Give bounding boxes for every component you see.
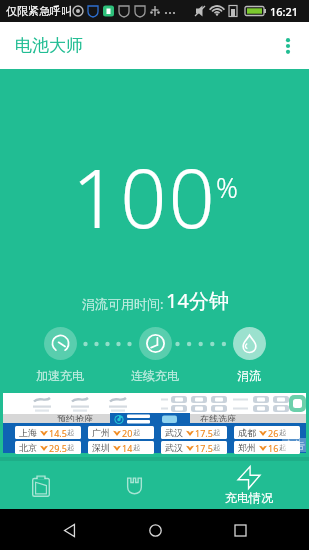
staticText: 上海 (19, 427, 37, 438)
button[interactable]: Back (52, 513, 86, 547)
button[interactable]: More options (269, 27, 307, 65)
button[interactable]: Battery health (0, 454, 86, 509)
button[interactable]: 充电情况 (204, 454, 294, 509)
button[interactable]: Charge mode (89, 454, 179, 509)
staticText: 成都 (238, 427, 256, 438)
staticText: 14.5 (49, 427, 67, 439)
button[interactable]: 武汉 (161, 426, 227, 439)
staticText: 起 (67, 443, 74, 452)
staticText: % (216, 169, 238, 206)
button[interactable]: 加速充电 (25, 327, 95, 383)
staticText: 连续充电 (131, 368, 179, 383)
staticText: 起 (133, 428, 140, 437)
staticText: 16 (268, 442, 279, 454)
button[interactable]: 成都 (234, 426, 300, 439)
staticText: 起 (213, 443, 220, 452)
button[interactable]: 上海 (15, 426, 81, 439)
button[interactable]: 深圳 (88, 441, 154, 454)
staticText: 100 (72, 141, 217, 251)
staticText: 郑州 (238, 442, 256, 453)
staticText: 加速充电 (36, 368, 84, 383)
button[interactable]: 北京 (15, 441, 81, 454)
button[interactable]: Advertisement (3, 393, 306, 453)
staticText: 涓流可用时间: (82, 295, 164, 313)
staticText: 武汉 (165, 427, 183, 438)
staticText: 26 (268, 427, 279, 439)
staticText: 起 (279, 443, 286, 452)
staticText: 20 (122, 427, 133, 439)
staticText: 14 (122, 442, 133, 454)
staticText: 北京 (19, 442, 37, 453)
button[interactable]: 武汉 (161, 441, 227, 454)
staticText: 仅限紧急呼叫 (6, 4, 72, 18)
staticText: 29.5 (49, 442, 67, 454)
staticText: 广告 (283, 438, 305, 452)
staticText: 16:21 (270, 4, 299, 19)
button[interactable]: 连续充电 (120, 327, 190, 383)
staticText: 起 (213, 428, 220, 437)
staticText: 预约抢座 (57, 413, 93, 422)
staticText: 广州 (92, 427, 110, 438)
button[interactable]: Home (138, 513, 172, 547)
staticText: 起 (67, 428, 74, 437)
staticText: 在线选座 (200, 413, 236, 422)
staticText: 起 (279, 428, 286, 437)
button[interactable]: 涓流 (214, 327, 284, 383)
staticText: 涓流 (237, 368, 261, 383)
staticText: 深圳 (92, 442, 110, 453)
staticText: 14分钟 (166, 287, 229, 314)
button[interactable]: 广州 (88, 426, 154, 439)
staticText: 电池大师 (15, 35, 83, 56)
staticText: 起 (133, 443, 140, 452)
staticText: 充电情况 (225, 490, 273, 505)
staticText: 武汉 (165, 442, 183, 453)
button[interactable]: 郑州 (234, 441, 300, 454)
staticText: 17.5 (195, 442, 213, 454)
staticText: 17.5 (195, 427, 213, 439)
button[interactable]: Recents (223, 513, 257, 547)
